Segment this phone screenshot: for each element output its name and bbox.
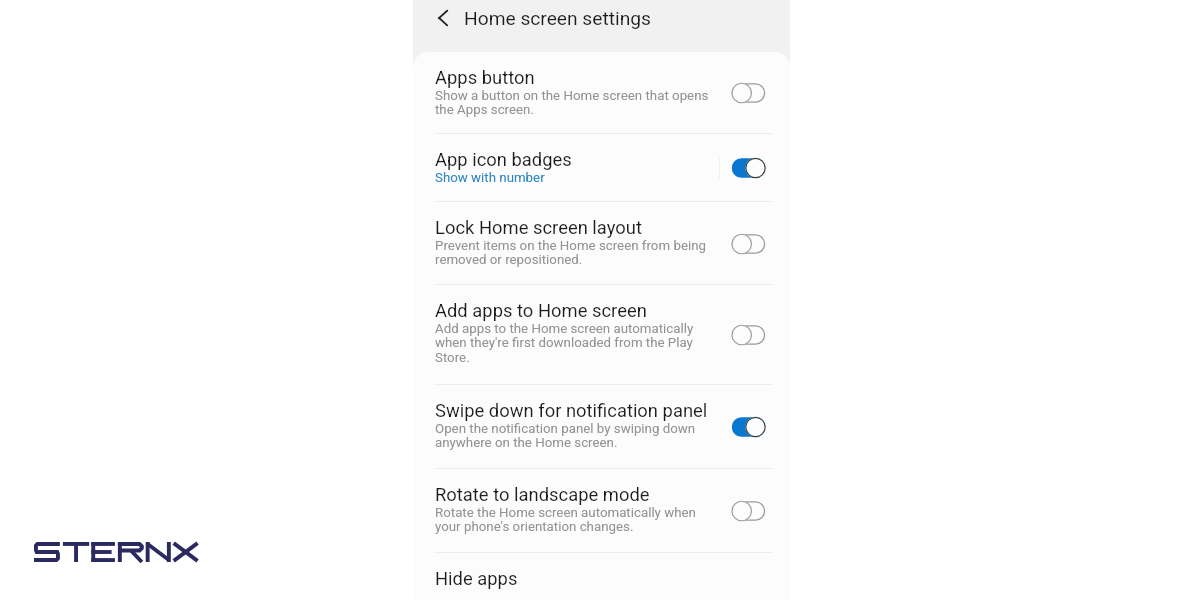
staticText: Rotate to landscape mode [435,484,650,506]
staticText: Swipe down for notification panel [435,400,708,422]
staticText: Store. [435,350,470,366]
button[interactable]: Switch on [724,148,773,188]
button[interactable]: Rotate to landscape mode [413,469,790,553]
button[interactable]: Lock Home screen layout [413,202,790,285]
button[interactable]: Apps button [413,52,790,134]
button[interactable]: Switch off [724,491,773,531]
staticText: anywhere on the Home screen. [435,435,618,451]
button[interactable]: Hide apps [413,553,790,600]
staticText: Open the notification panel by swiping d… [435,421,696,437]
button[interactable]: Back [431,5,457,31]
button[interactable]: Switch on [724,407,773,447]
staticText: removed or repositioned. [435,252,583,268]
button[interactable]: App icon badges [413,134,790,202]
staticText: Prevent items on the Home screen from be… [435,238,706,254]
button[interactable]: Swipe down for notification panel [413,385,790,469]
staticText: Hide apps [435,568,518,590]
button[interactable]: Add apps to Home screen [413,285,790,385]
staticText: Add apps to Home screen [435,300,647,322]
staticText: Show a button on the Home screen that op… [435,88,709,104]
button[interactable]: Switch off [724,315,773,355]
button[interactable]: Switch off [724,73,773,113]
staticText: Show with number [435,170,545,186]
button[interactable]: Switch off [724,224,773,264]
staticText: your phone's orientation changes. [435,519,634,535]
staticText: Rotate the Home screen automatically whe… [435,505,696,521]
staticText: Lock Home screen layout [435,217,642,239]
staticText: the Apps screen. [435,102,534,118]
staticText: Home screen settings [464,7,651,30]
staticText: App icon badges [435,149,572,171]
staticText: Add apps to the Home screen automaticall… [435,321,694,337]
staticText: when they're first downloaded from the P… [435,335,693,351]
staticText: Apps button [435,67,535,89]
